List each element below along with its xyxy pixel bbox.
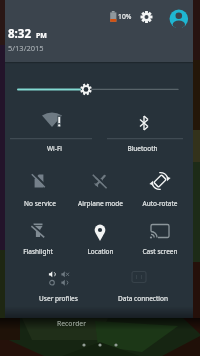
staticText: No service <box>24 199 56 208</box>
staticText: 8:32 <box>8 26 31 42</box>
button[interactable] <box>70 218 130 260</box>
staticText: 10% <box>118 12 132 21</box>
button[interactable] <box>130 164 190 210</box>
button[interactable] <box>130 218 190 260</box>
button[interactable] <box>8 106 100 156</box>
button[interactable] <box>102 264 192 306</box>
staticText: PM <box>36 31 47 41</box>
button[interactable] <box>10 164 70 210</box>
staticText: Wi-Fi <box>47 144 62 153</box>
staticText: 5/13/2015 <box>8 43 44 53</box>
staticText: Auto-rotate <box>142 199 178 208</box>
button[interactable] <box>10 264 102 306</box>
staticText: Cast screen <box>142 247 178 256</box>
staticText: Flashlight <box>23 247 53 256</box>
staticText: Location <box>87 247 114 256</box>
button[interactable] <box>70 164 130 210</box>
staticText: Airplane mode <box>78 199 123 208</box>
button[interactable] <box>100 106 192 156</box>
staticText: Bluetooth <box>127 144 158 153</box>
button[interactable] <box>138 8 156 26</box>
staticText: User profiles <box>39 294 78 303</box>
button[interactable] <box>10 80 190 100</box>
staticText: Recorder <box>57 319 86 328</box>
button[interactable] <box>168 8 190 30</box>
staticText: Data connection <box>118 294 168 303</box>
button[interactable] <box>10 218 70 260</box>
